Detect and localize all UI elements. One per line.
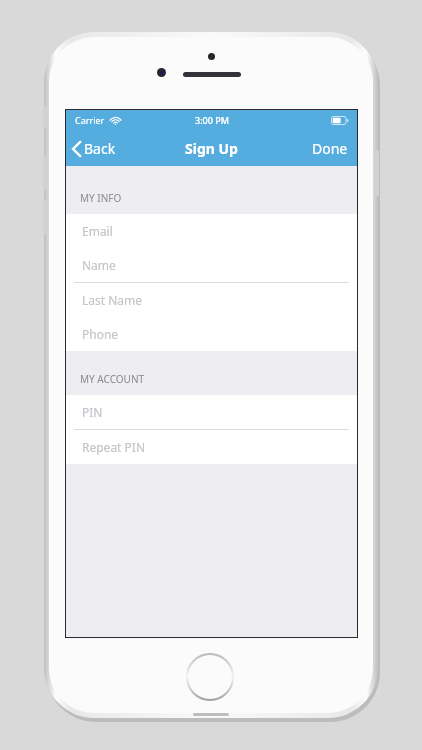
staticText: Done	[312, 139, 348, 158]
button[interactable]: Home	[186, 653, 234, 701]
staticText: Name	[82, 257, 116, 273]
staticText: Email	[82, 223, 113, 239]
staticText: 3:00 PM	[195, 114, 229, 126]
staticText: Last Name	[82, 292, 143, 308]
staticText: Back	[84, 139, 116, 158]
button[interactable]: PIN	[66, 395, 357, 430]
button[interactable]: Email	[66, 214, 357, 248]
button[interactable]: Back	[66, 135, 124, 162]
button[interactable]: Phone	[66, 317, 357, 351]
staticText: Sign Up	[185, 139, 238, 158]
staticText: PIN	[82, 404, 103, 420]
button[interactable]: Name	[66, 248, 357, 283]
staticText: Repeat PIN	[82, 439, 146, 455]
staticText: Phone	[82, 326, 119, 342]
staticText: MY INFO	[80, 191, 122, 205]
button[interactable]: Repeat PIN	[66, 430, 357, 464]
button[interactable]: Last Name	[66, 283, 357, 317]
staticText: MY ACCOUNT	[80, 372, 145, 386]
button[interactable]: Done	[303, 135, 357, 162]
staticText: Carrier	[75, 114, 105, 126]
